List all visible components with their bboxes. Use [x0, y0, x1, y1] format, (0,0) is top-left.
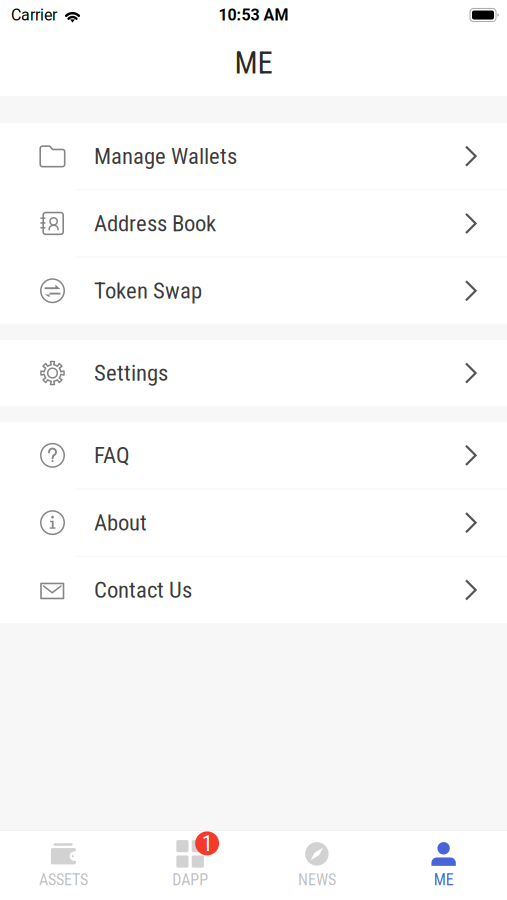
staticText: ME: [234, 45, 272, 81]
button[interactable]: Settings: [0, 340, 507, 406]
staticText: NEWS: [298, 870, 336, 889]
staticText: 1: [202, 830, 213, 857]
staticText: DAPP: [172, 870, 208, 889]
staticText: Contact Us: [94, 577, 192, 603]
button[interactable]: About: [0, 489, 507, 557]
staticText: About: [94, 509, 147, 536]
staticText: Settings: [94, 360, 168, 386]
staticText: Token Swap: [94, 277, 202, 304]
staticText: 10:53 AM: [218, 6, 288, 24]
staticText: ME: [434, 870, 454, 889]
button[interactable]: NEWS: [253, 841, 380, 889]
button[interactable]: Token Swap: [0, 258, 507, 324]
button[interactable]: 1: [127, 841, 254, 889]
staticText: Carrier: [11, 6, 57, 24]
staticText: Address Book: [94, 210, 216, 237]
staticText: Manage Wallets: [94, 143, 237, 169]
staticText: FAQ: [94, 442, 130, 469]
button[interactable]: Manage Wallets: [0, 123, 507, 190]
button[interactable]: FAQ: [0, 422, 507, 489]
button[interactable]: ASSETS: [0, 841, 127, 889]
button[interactable]: Address Book: [0, 190, 507, 258]
button[interactable]: ME: [380, 841, 507, 889]
button[interactable]: Contact Us: [0, 557, 507, 623]
staticText: ASSETS: [39, 870, 88, 889]
